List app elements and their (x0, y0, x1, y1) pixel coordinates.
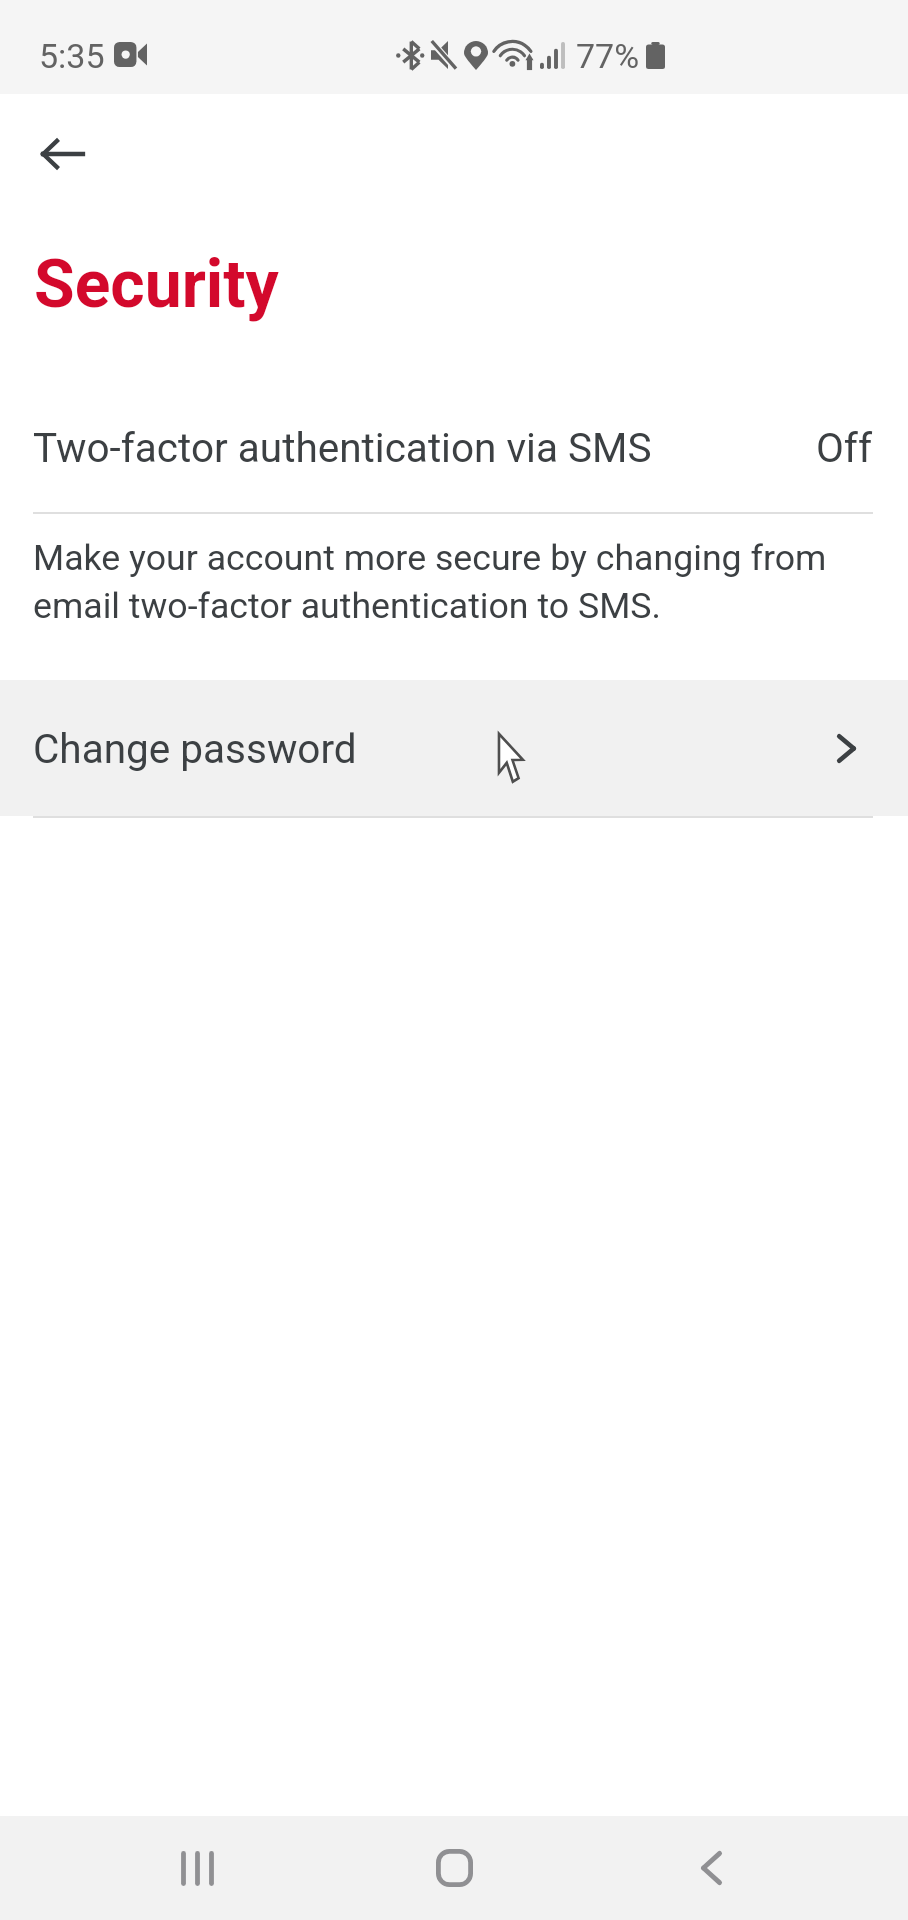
staticText: Make your account more secure by changin… (33, 532, 881, 628)
staticText: 5:35 (39, 36, 105, 76)
button[interactable]: Back (22, 114, 102, 194)
button[interactable]: Change password (0, 680, 908, 816)
button[interactable]: Back (651, 1816, 771, 1920)
staticText: 77% (576, 36, 640, 76)
staticText: Off (816, 424, 873, 471)
button[interactable]: Home (394, 1816, 514, 1920)
staticText: Security (34, 246, 279, 323)
staticText: Change password (33, 725, 357, 772)
staticText: Two-factor authentication via SMS (33, 424, 652, 471)
button[interactable]: Two-factor authentication via SMS (0, 398, 908, 496)
button[interactable]: Recent apps (137, 1816, 257, 1920)
